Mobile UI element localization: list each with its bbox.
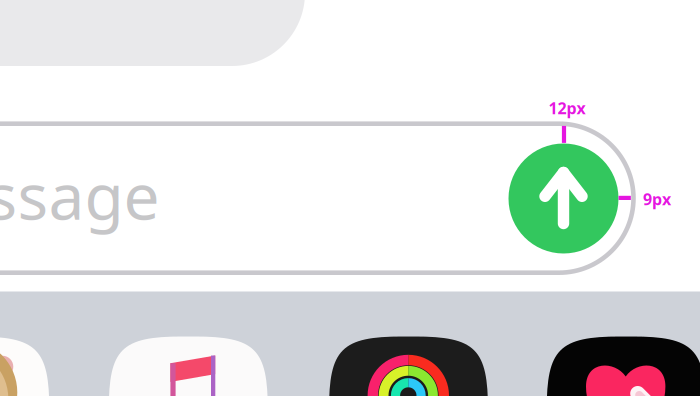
staticText: 9px <box>643 188 671 210</box>
button[interactable]: Send <box>508 143 618 253</box>
staticText: 12px <box>548 97 585 119</box>
button[interactable]: Fitness <box>329 336 488 396</box>
staticText: ssage <box>0 152 159 237</box>
button[interactable]: Health <box>547 336 700 396</box>
button[interactable]: Contact <box>0 336 49 396</box>
button[interactable]: Music <box>109 336 268 396</box>
